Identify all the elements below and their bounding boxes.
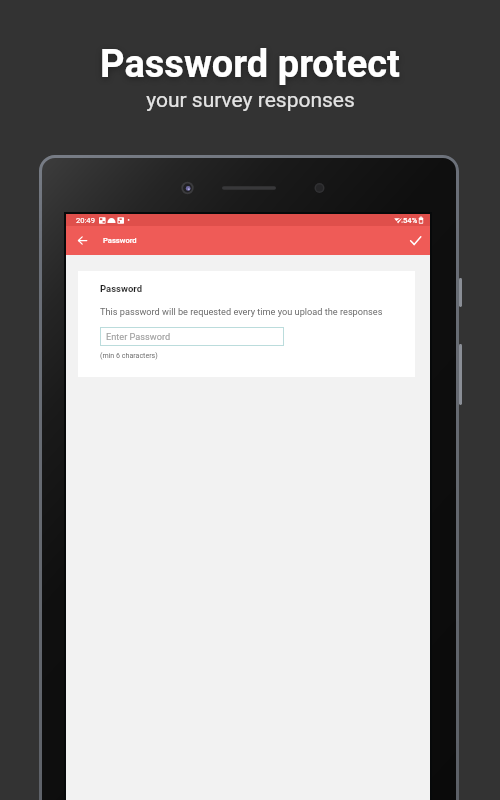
- button[interactable]: Done: [404, 229, 427, 252]
- staticText: 54%: [403, 216, 418, 225]
- staticText: Password: [103, 236, 137, 245]
- button[interactable]: Navigate up: [71, 229, 94, 252]
- staticText: This password will be requested every ti…: [100, 306, 383, 317]
- button[interactable]: Enter Password: [100, 327, 284, 346]
- staticText: Enter Password: [106, 331, 171, 342]
- staticText: (min 6 characters): [100, 351, 158, 359]
- staticText: 20:49: [76, 216, 95, 225]
- staticText: Password protect: [100, 42, 400, 87]
- staticText: your survey responses: [146, 88, 355, 113]
- staticText: Password: [100, 283, 143, 294]
